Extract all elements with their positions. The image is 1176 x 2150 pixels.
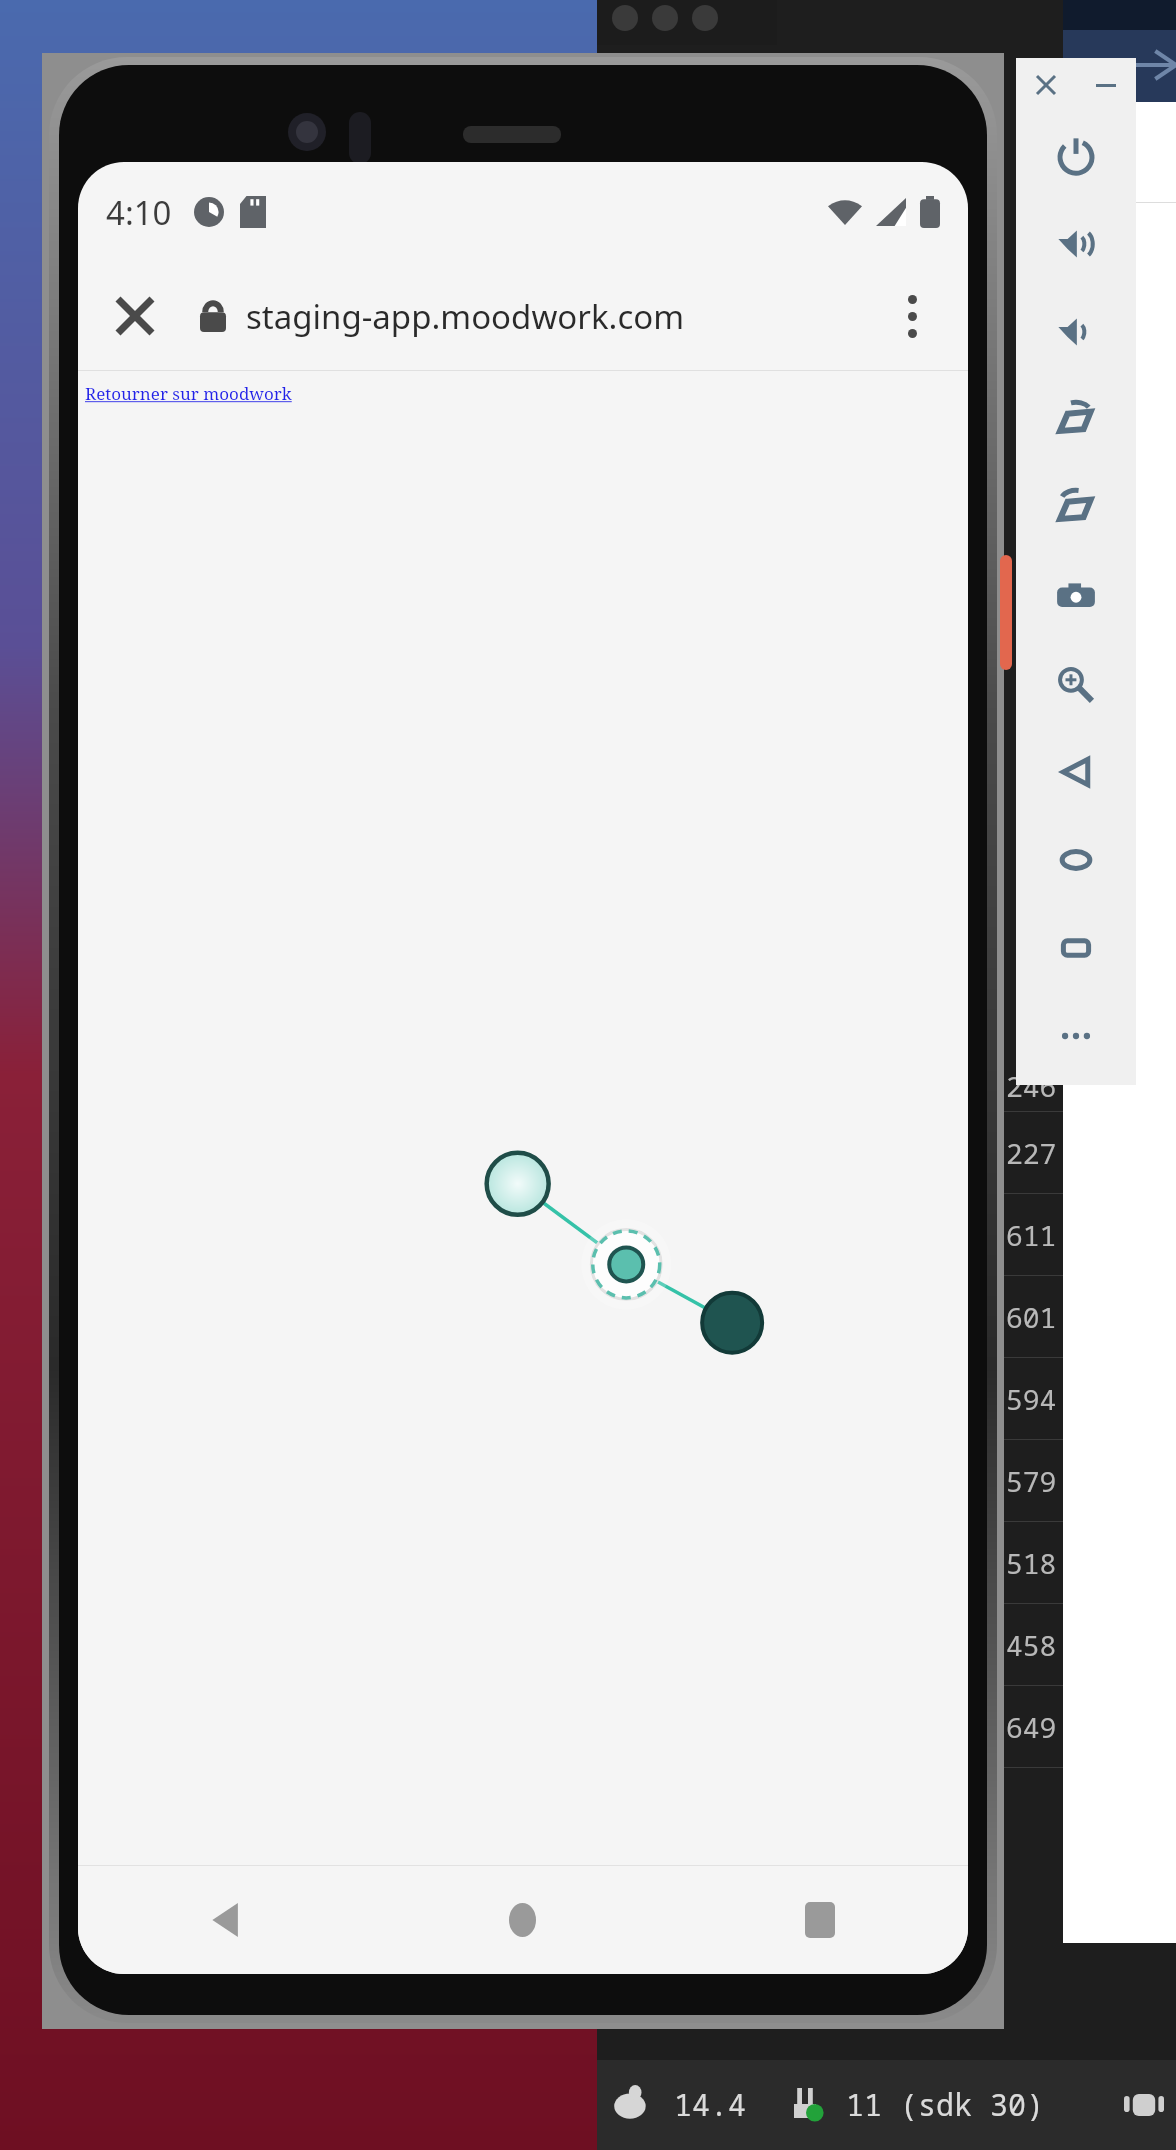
button[interactable]: Volume up xyxy=(1016,200,1136,288)
staticText: 246 xyxy=(1006,1067,1057,1105)
button[interactable]: Rotate right xyxy=(1016,464,1136,552)
staticText: 11 (sdk 30) xyxy=(846,2084,1044,2125)
button[interactable]: staging-app.moodwork.com xyxy=(246,294,685,339)
staticText: 611 xyxy=(1006,1216,1057,1254)
button[interactable]: More options xyxy=(882,286,942,346)
button[interactable]: Zoom xyxy=(1016,640,1136,728)
staticText: 4:10 xyxy=(106,190,172,235)
button[interactable]: Volume down xyxy=(1016,288,1136,376)
button[interactable]: More xyxy=(1016,992,1136,1080)
button[interactable]: Overview xyxy=(1016,904,1136,992)
staticText: 649 xyxy=(1006,1708,1057,1746)
button[interactable]: Close xyxy=(1016,58,1076,112)
button[interactable]: Back xyxy=(1016,728,1136,816)
button[interactable]: Take screenshot xyxy=(1016,552,1136,640)
staticText: 518 xyxy=(1006,1544,1057,1582)
button[interactable]: Back xyxy=(78,1866,374,1974)
staticText: 458 xyxy=(1006,1626,1057,1664)
staticText: 14.4 xyxy=(674,2084,746,2125)
button[interactable]: Home xyxy=(374,1866,671,1974)
button[interactable]: Power xyxy=(1016,112,1136,200)
staticText: 227 xyxy=(1006,1134,1057,1172)
button[interactable]: Home xyxy=(1016,816,1136,904)
button[interactable]: Rotate left xyxy=(1016,376,1136,464)
staticText: 594 xyxy=(1006,1380,1057,1418)
button[interactable]: Retourner sur moodwork xyxy=(85,382,292,405)
button[interactable]: Minimize xyxy=(1076,58,1136,112)
button[interactable]: Close xyxy=(104,285,166,347)
staticText: 579 xyxy=(1006,1462,1057,1500)
staticText: 601 xyxy=(1006,1298,1057,1336)
button[interactable]: Recents xyxy=(671,1866,968,1974)
